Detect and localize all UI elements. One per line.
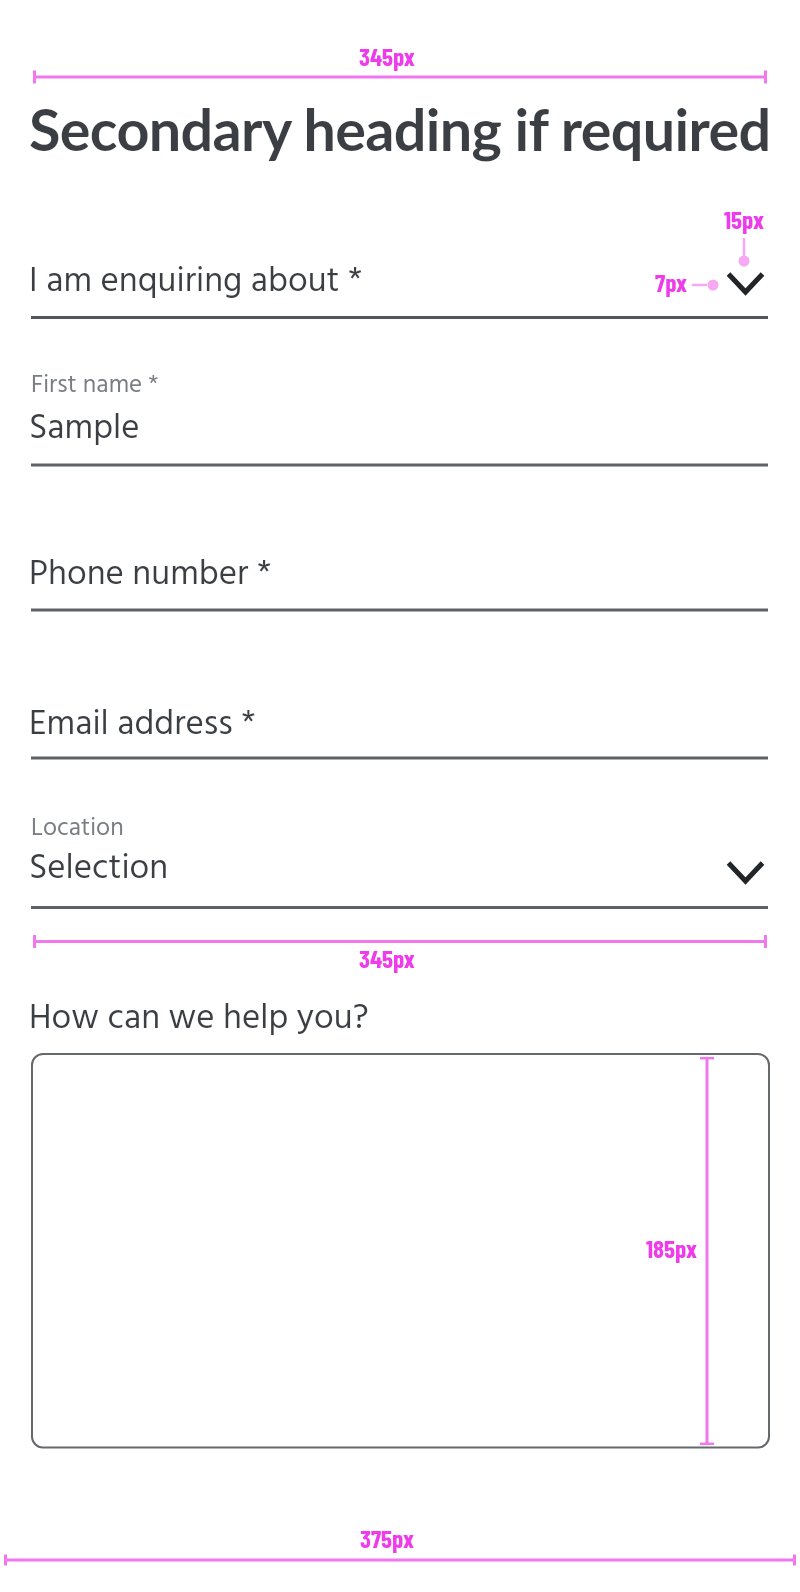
staticText: Secondary heading if required [29, 94, 771, 163]
button[interactable] [31, 250, 768, 320]
staticText: 345px [359, 41, 415, 71]
staticText: Phone number * [29, 547, 272, 603]
staticText: 375px [360, 1523, 414, 1553]
staticText: 345px [359, 943, 415, 973]
staticText: Sample [29, 401, 140, 457]
staticText: I am enquiring about * [29, 254, 363, 310]
staticText: 15px [724, 204, 764, 234]
button[interactable] [31, 1053, 769, 1448]
button[interactable] [31, 693, 768, 760]
button[interactable] [31, 545, 768, 612]
button[interactable] [31, 806, 768, 909]
staticText: 7px [655, 267, 688, 297]
button[interactable] [31, 362, 768, 467]
staticText: Selection [29, 841, 169, 897]
staticText: 185px [646, 1233, 697, 1263]
staticText: First name * [31, 366, 159, 406]
staticText: How can we help you? [29, 991, 369, 1047]
staticText: Email address * [29, 697, 256, 753]
staticText: Location [31, 809, 124, 849]
